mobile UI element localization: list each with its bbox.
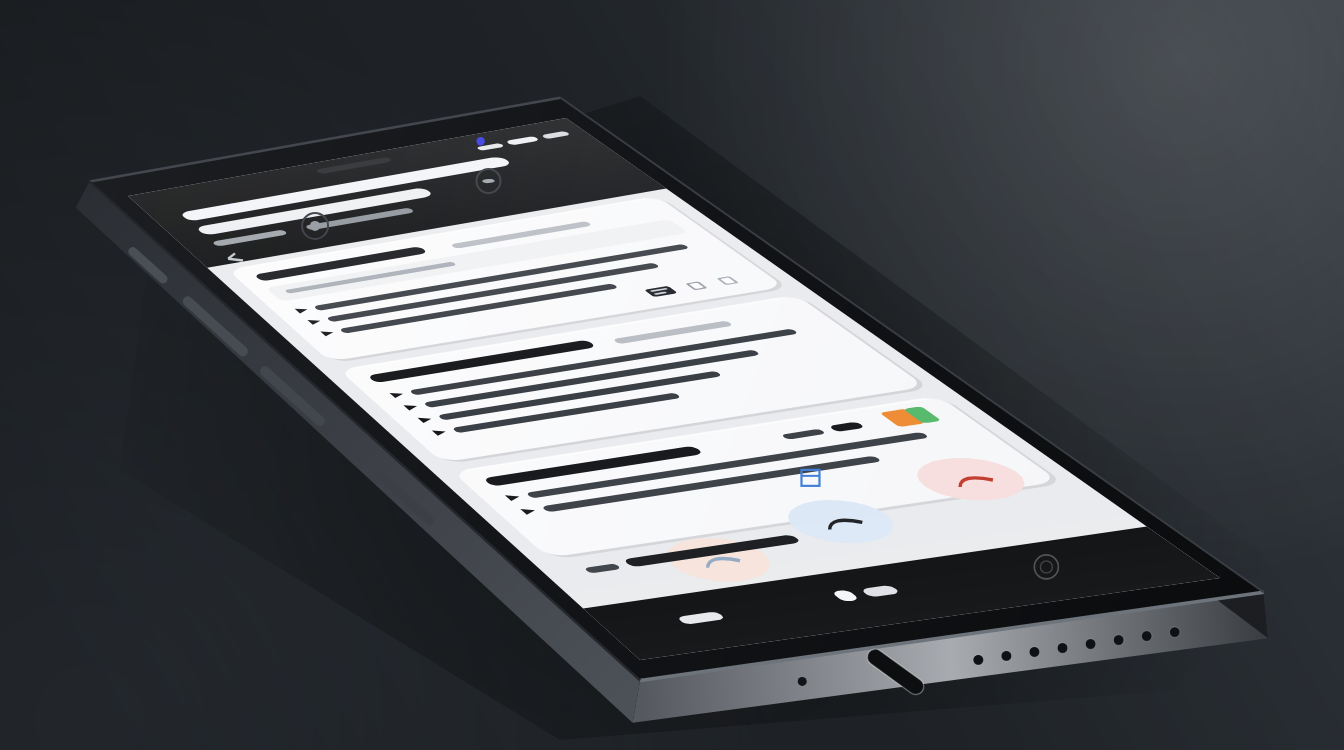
button[interactable]: Phone showing a notes app bbox=[0, 0, 1344, 750]
